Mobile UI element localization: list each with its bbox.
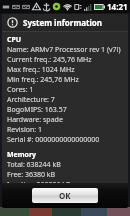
staticText: Max freq.: 1024 MHz — [7, 65, 75, 75]
staticText: Current freq.: 245,76 MHz — [7, 55, 92, 65]
staticText: Memory — [7, 150, 37, 160]
button[interactable]: OK — [32, 188, 98, 203]
staticText: BogoMIPS: 163.57 — [7, 105, 67, 115]
staticText: Cores: 1 — [7, 85, 34, 95]
staticText: OK — [59, 190, 71, 201]
other: Information — [7, 17, 18, 28]
staticText: Min freq.: 245,76 MHz — [7, 75, 79, 85]
staticText: Architecture: 7 — [7, 95, 55, 105]
staticText: Name: ARMv7 Processor rev 1 (v7l) — [7, 45, 121, 55]
staticText: Total: 638244 kB — [7, 160, 61, 170]
staticText: Serial #: 0000000000000000 — [7, 135, 100, 145]
staticText: Revision: 1 — [7, 125, 42, 135]
staticText: System information — [23, 17, 103, 28]
staticText: 14:21 — [107, 1, 128, 12]
staticText: Hardware: spade — [7, 115, 63, 125]
staticText: CPU — [7, 35, 22, 45]
staticText: Free: 36380 kB — [7, 170, 56, 180]
staticText: Inactive: 260236 kB — [7, 180, 71, 183]
